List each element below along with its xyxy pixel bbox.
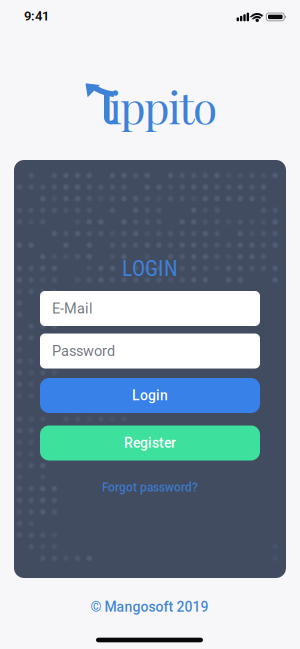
button[interactable]: Register <box>40 425 260 460</box>
staticText: 9:41 <box>24 8 49 24</box>
staticText: © Mangosoft 2019 <box>90 599 208 615</box>
staticText: ippito <box>109 77 217 135</box>
staticText: Password <box>52 342 115 359</box>
button[interactable]: Password <box>40 333 260 368</box>
staticText: Register <box>124 435 176 451</box>
button[interactable]: E-Mail <box>40 291 260 326</box>
button[interactable]: Login <box>40 378 260 413</box>
staticText: Forgot password? <box>102 480 198 495</box>
staticText: LOGIN <box>122 256 178 281</box>
staticText: E-Mail <box>52 300 93 317</box>
button[interactable]: Forgot password? <box>102 480 198 495</box>
staticText: Login <box>132 387 168 404</box>
